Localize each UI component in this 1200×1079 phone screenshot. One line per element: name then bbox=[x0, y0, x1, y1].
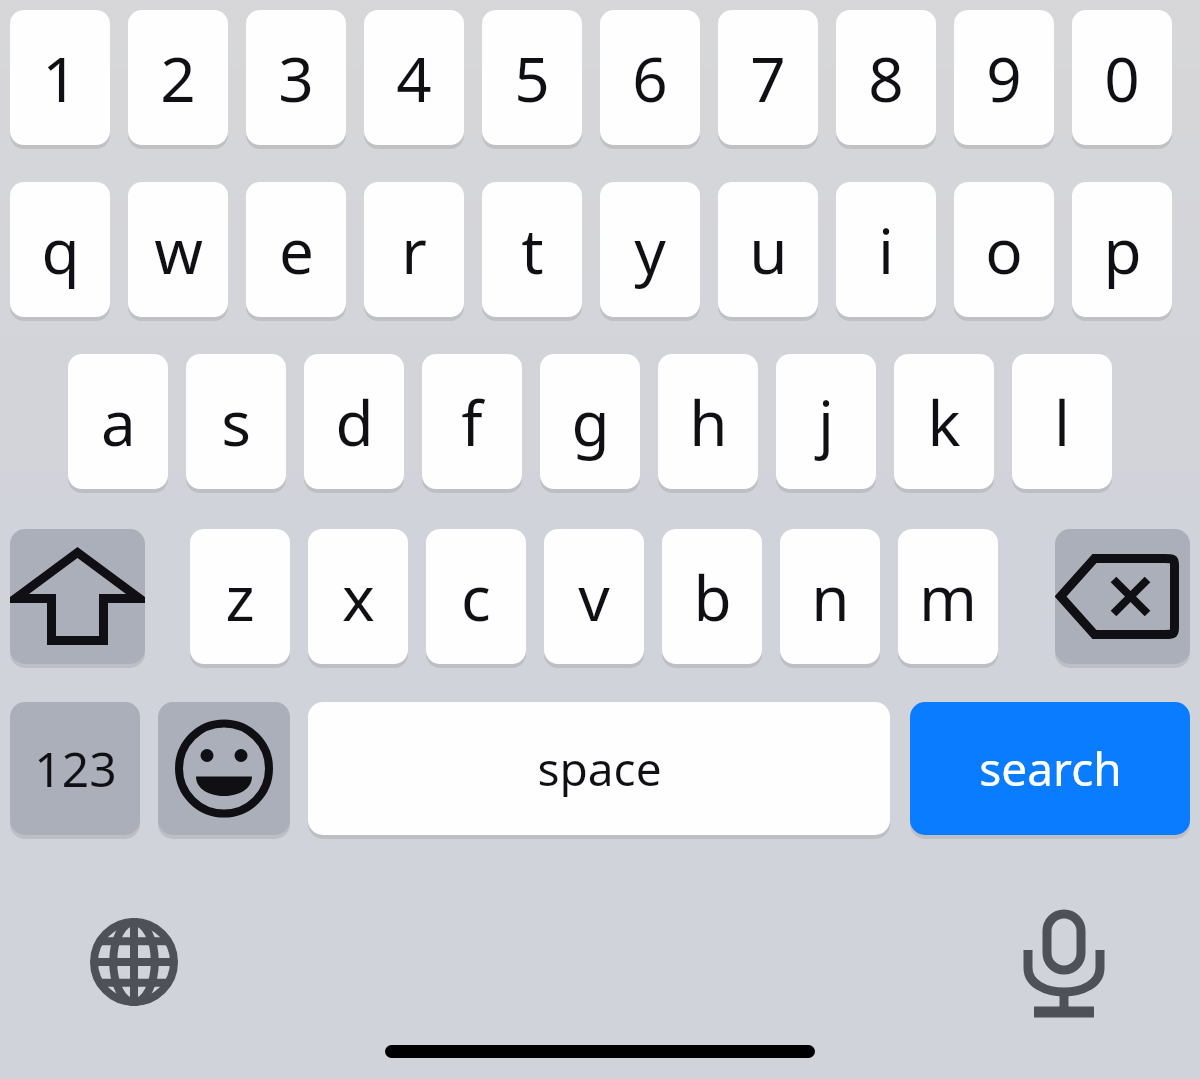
staticText: c bbox=[461, 555, 491, 639]
button[interactable]: d bbox=[304, 354, 404, 489]
button[interactable]: p bbox=[1072, 182, 1172, 317]
button[interactable]: 5 bbox=[482, 10, 582, 145]
staticText: 9 bbox=[986, 36, 1022, 120]
button[interactable]: b bbox=[662, 529, 762, 664]
staticText: h bbox=[689, 380, 728, 464]
staticText: 123 bbox=[34, 736, 117, 801]
button[interactable]: Backspace bbox=[1055, 529, 1190, 664]
staticText: 5 bbox=[514, 36, 550, 120]
button[interactable]: 6 bbox=[600, 10, 700, 145]
button[interactable]: Emoji bbox=[158, 702, 290, 835]
staticText: 0 bbox=[1104, 36, 1140, 120]
staticText: k bbox=[927, 380, 961, 464]
button[interactable]: Shift bbox=[10, 529, 145, 664]
button[interactable]: e bbox=[246, 182, 346, 317]
staticText: f bbox=[461, 380, 483, 464]
staticText: i bbox=[878, 208, 894, 292]
staticText: v bbox=[578, 555, 610, 639]
staticText: j bbox=[818, 380, 834, 464]
staticText: x bbox=[342, 555, 375, 639]
button[interactable]: i bbox=[836, 182, 936, 317]
button[interactable]: t bbox=[482, 182, 582, 317]
staticText: t bbox=[521, 208, 544, 292]
button[interactable]: z bbox=[190, 529, 290, 664]
button[interactable]: h bbox=[658, 354, 758, 489]
button[interactable]: f bbox=[422, 354, 522, 489]
staticText: 7 bbox=[750, 36, 786, 120]
staticText: search bbox=[979, 737, 1122, 800]
button[interactable]: 3 bbox=[246, 10, 346, 145]
button[interactable]: 1 bbox=[10, 10, 110, 145]
staticText: 6 bbox=[632, 36, 668, 120]
button[interactable]: c bbox=[426, 529, 526, 664]
button[interactable]: 4 bbox=[364, 10, 464, 145]
button[interactable]: r bbox=[364, 182, 464, 317]
button[interactable]: 8 bbox=[836, 10, 936, 145]
staticText: m bbox=[919, 555, 977, 639]
button[interactable]: m bbox=[898, 529, 998, 664]
staticText: 8 bbox=[868, 36, 904, 120]
staticText: space bbox=[537, 737, 662, 800]
staticText: g bbox=[571, 380, 610, 464]
button[interactable]: o bbox=[954, 182, 1054, 317]
staticText: u bbox=[749, 208, 788, 292]
staticText: 3 bbox=[278, 36, 314, 120]
staticText: y bbox=[634, 208, 666, 292]
button[interactable]: Change keyboard language bbox=[84, 912, 184, 1012]
staticText: o bbox=[985, 208, 1023, 292]
button[interactable]: j bbox=[776, 354, 876, 489]
button[interactable]: a bbox=[68, 354, 168, 489]
button[interactable]: 123 bbox=[10, 702, 140, 835]
button[interactable]: g bbox=[540, 354, 640, 489]
button[interactable]: search bbox=[910, 702, 1190, 835]
staticText: 2 bbox=[160, 36, 196, 120]
button[interactable]: y bbox=[600, 182, 700, 317]
button[interactable]: 2 bbox=[128, 10, 228, 145]
staticText: p bbox=[1103, 208, 1142, 292]
staticText: r bbox=[401, 208, 427, 292]
staticText: s bbox=[221, 380, 251, 464]
button[interactable]: l bbox=[1012, 354, 1112, 489]
staticText: 1 bbox=[42, 36, 78, 120]
button[interactable]: q bbox=[10, 182, 110, 317]
button[interactable]: s bbox=[186, 354, 286, 489]
staticText: e bbox=[279, 208, 314, 292]
button[interactable]: v bbox=[544, 529, 644, 664]
button[interactable]: 0 bbox=[1072, 10, 1172, 145]
staticText: w bbox=[154, 208, 203, 292]
button[interactable]: k bbox=[894, 354, 994, 489]
button[interactable]: 9 bbox=[954, 10, 1054, 145]
staticText: q bbox=[41, 208, 80, 292]
staticText: 4 bbox=[396, 36, 432, 120]
button[interactable]: Dictation bbox=[1014, 912, 1114, 1012]
staticText: a bbox=[101, 380, 136, 464]
staticText: d bbox=[335, 380, 374, 464]
button[interactable]: x bbox=[308, 529, 408, 664]
button[interactable]: u bbox=[718, 182, 818, 317]
button[interactable]: n bbox=[780, 529, 880, 664]
button[interactable]: 7 bbox=[718, 10, 818, 145]
staticText: b bbox=[693, 555, 732, 639]
button[interactable]: space bbox=[308, 702, 890, 835]
staticText: n bbox=[811, 555, 850, 639]
staticText: l bbox=[1054, 380, 1070, 464]
staticText: z bbox=[225, 555, 255, 639]
button[interactable]: w bbox=[128, 182, 228, 317]
